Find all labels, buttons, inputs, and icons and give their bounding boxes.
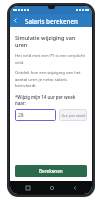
button[interactable]: Berekenen xyxy=(15,165,87,177)
staticText: Ontdek hoe een wijziging van het aantal … xyxy=(15,70,87,88)
staticText: *Wijzig mijn 14 uur per week naar: xyxy=(15,94,87,106)
button[interactable]: 28 xyxy=(15,109,56,121)
button[interactable]: Terug xyxy=(69,182,80,193)
staticText: 28 xyxy=(18,112,24,119)
staticText: Het veld met een (*) is een verplicht ve… xyxy=(15,53,87,65)
staticText: Berekenen xyxy=(39,168,63,174)
button[interactable]: Terug xyxy=(10,15,21,26)
button[interactable]: Home xyxy=(46,182,57,193)
staticText: Uur per week xyxy=(61,113,86,118)
staticText: Simulatie wijziging van uren xyxy=(15,34,87,48)
staticText: Salaris berekenen xyxy=(25,17,78,25)
button[interactable]: Recente apps xyxy=(22,182,33,193)
